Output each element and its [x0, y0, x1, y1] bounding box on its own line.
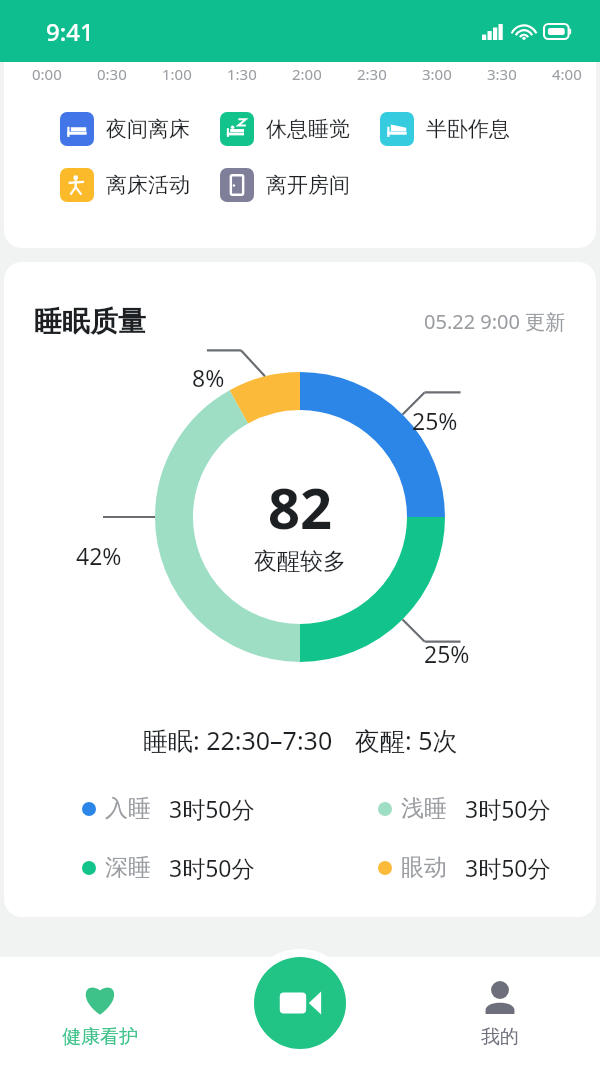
staticText: 2:30: [357, 64, 387, 84]
staticText: 1:30: [227, 64, 257, 84]
staticText: 睡眠质量: [34, 304, 146, 339]
staticText: 夜醒较多: [254, 547, 346, 576]
staticText: 4:00: [552, 64, 582, 84]
staticText: 3时50分: [169, 852, 255, 883]
button[interactable]: 离开房间: [220, 168, 380, 202]
staticText: 我的: [481, 1025, 519, 1049]
staticText: 2:00: [292, 64, 322, 84]
button[interactable]: 离床活动: [60, 168, 220, 202]
staticText: 浅睡: [401, 794, 447, 823]
button[interactable]: 入睡: [4, 793, 300, 824]
staticText: 3时50分: [465, 793, 551, 824]
staticText: 半卧作息: [426, 116, 510, 142]
staticText: 0:30: [97, 64, 127, 84]
button[interactable]: Start video call: [254, 957, 346, 1049]
staticText: 健康看护: [62, 1025, 138, 1049]
staticText: 夜间离床: [106, 116, 190, 142]
staticText: 0:00: [32, 64, 62, 84]
staticText: 休息睡觉: [266, 116, 350, 142]
staticText: 深睡: [105, 853, 151, 882]
staticText: 42%: [76, 540, 122, 571]
staticText: 夜醒: 5次: [355, 723, 458, 757]
button[interactable]: 深睡: [4, 852, 300, 883]
button[interactable]: 休息睡觉: [220, 112, 380, 146]
staticText: 05.22 9:00 更新: [424, 308, 566, 335]
staticText: 3:00: [422, 64, 452, 84]
staticText: 3:30: [487, 64, 517, 84]
staticText: 1:00: [162, 64, 192, 84]
button[interactable]: 我的: [400, 957, 600, 1067]
staticText: 睡眠: 22:30–7:30: [143, 723, 333, 757]
button[interactable]: 半卧作息: [380, 112, 540, 146]
staticText: 3时50分: [169, 793, 255, 824]
staticText: 82: [268, 469, 333, 545]
button[interactable]: 夜间离床: [60, 112, 220, 146]
button[interactable]: 健康看护: [0, 957, 200, 1067]
staticText: 眼动: [401, 853, 447, 882]
staticText: 25%: [424, 638, 470, 669]
staticText: 离床活动: [106, 172, 190, 198]
staticText: 9:41: [46, 15, 94, 48]
staticText: 离开房间: [266, 172, 350, 198]
button[interactable]: 浅睡: [300, 793, 596, 824]
staticText: 8%: [192, 362, 225, 393]
staticText: 入睡: [105, 794, 151, 823]
staticText: 3时50分: [465, 852, 551, 883]
staticText: 25%: [412, 405, 458, 436]
button[interactable]: 眼动: [300, 852, 596, 883]
